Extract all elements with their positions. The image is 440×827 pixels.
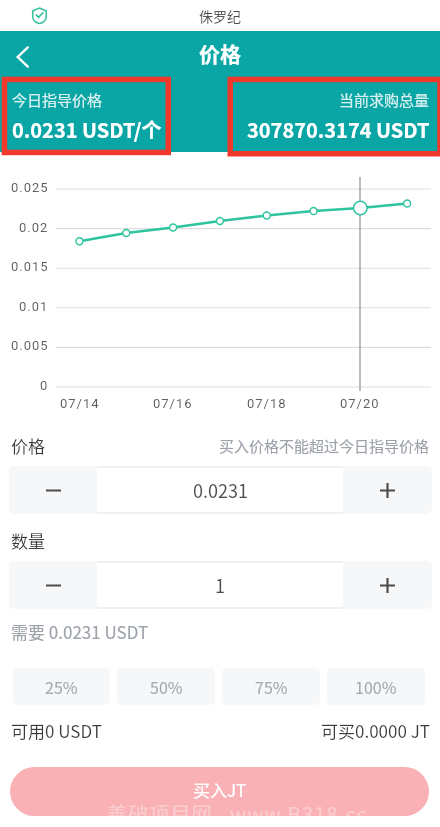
- staticText: 07/20: [340, 396, 380, 411]
- staticText: 买入价格不能超过今日指导价格: [219, 435, 430, 457]
- staticText: 07/16: [153, 396, 193, 411]
- staticText: 0.0231 USDT/个: [12, 115, 162, 144]
- staticText: 数量: [11, 528, 45, 553]
- button[interactable]: 买入JT: [10, 767, 429, 816]
- staticText: 可买0.0000 JT: [321, 718, 430, 743]
- staticText: 50%: [150, 675, 183, 698]
- button[interactable]: 50%: [117, 668, 215, 705]
- staticText: 307870.3174 USDT: [247, 115, 430, 144]
- staticText: 0.015: [11, 259, 49, 274]
- button[interactable]: Decrease: [9, 466, 97, 514]
- button[interactable]: 75%: [222, 668, 320, 705]
- staticText: 100%: [355, 675, 397, 698]
- staticText: 买入JT: [193, 777, 247, 802]
- staticText: 善破项目网 www.B318.cc: [107, 799, 368, 827]
- staticText: 需要 0.0231 USDT: [11, 619, 149, 644]
- staticText: 1: [215, 572, 225, 598]
- staticText: 75%: [255, 675, 288, 698]
- staticText: 价格: [11, 433, 45, 458]
- staticText: 07/18: [247, 396, 287, 411]
- staticText: 价格: [199, 38, 241, 68]
- staticText: 0.0231: [193, 477, 248, 503]
- other: Secure site: [31, 7, 48, 24]
- staticText: 侏罗纪: [199, 6, 241, 26]
- staticText: 可用0 USDT: [11, 718, 102, 743]
- staticText: 07/14: [60, 396, 100, 411]
- button[interactable]: Decrease: [9, 561, 97, 609]
- staticText: 25%: [45, 675, 78, 698]
- button[interactable]: 100%: [327, 668, 425, 705]
- staticText: 0.01: [19, 299, 49, 314]
- button[interactable]: Increase: [343, 466, 432, 514]
- staticText: 0.025: [11, 180, 49, 195]
- button[interactable]: Back: [3, 37, 43, 77]
- staticText: 0.02: [19, 220, 49, 235]
- button[interactable]: 25%: [13, 668, 110, 705]
- staticText: 0.005: [11, 338, 49, 353]
- button[interactable]: Increase: [343, 561, 432, 609]
- staticText: 当前求购总量: [339, 89, 430, 111]
- staticText: 今日指导价格: [12, 89, 103, 111]
- staticText: 0: [40, 378, 49, 393]
